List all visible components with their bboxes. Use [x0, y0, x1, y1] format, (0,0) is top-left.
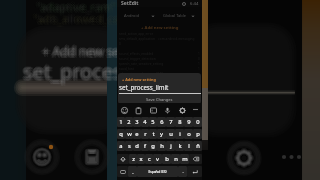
staticText: 8 [178, 118, 182, 126]
staticText: l [188, 142, 190, 150]
button[interactable]: Backspace [189, 154, 202, 164]
button[interactable]: ssl_session_cache_size 2048 [119, 71, 200, 76]
staticText: . [182, 169, 184, 175]
button[interactable]: sms_default_application com.android.mess… [119, 36, 200, 41]
button[interactable]: 8 [175, 117, 184, 127]
staticText: set_proces [25, 57, 125, 84]
button[interactable]: p [193, 129, 202, 139]
button[interactable]: Shift [117, 154, 129, 164]
staticText: "adb_allowed_co [33, 9, 120, 24]
button[interactable]: u [166, 129, 175, 139]
staticText: "adaptive_ram" [35, 0, 116, 13]
staticText: set_proces [23, 58, 123, 85]
button[interactable]: 5 [149, 117, 157, 127]
button[interactable]: Android [124, 12, 155, 19]
button[interactable]: + Add new setting [122, 77, 156, 82]
staticText: , [132, 169, 134, 175]
staticText: "adaptive_ram" [37, 0, 118, 15]
staticText: "adaptive_ram" [38, 0, 119, 14]
staticText: Global Table [163, 13, 191, 18]
staticText: + Add new se [41, 42, 119, 59]
button[interactable]: Global Table [163, 12, 195, 19]
button[interactable]: j [166, 141, 175, 151]
button[interactable]: c [145, 154, 153, 164]
button[interactable]: t [149, 129, 157, 139]
button[interactable]: 2 [125, 117, 133, 127]
button[interactable]: r [141, 129, 149, 139]
button[interactable]: Voice input [162, 105, 172, 115]
button[interactable]: f [141, 141, 149, 151]
button[interactable]: z [129, 154, 137, 164]
button[interactable]: e [133, 129, 141, 139]
button[interactable]: Español (ES) [137, 166, 178, 177]
button[interactable]: q [117, 129, 125, 139]
button[interactable]: + Add new setting [119, 24, 200, 31]
button[interactable]: 9 [184, 117, 193, 127]
button[interactable]: v [153, 154, 162, 164]
button[interactable]: 4 [141, 117, 149, 127]
button[interactable]: m [180, 154, 189, 164]
button[interactable]: Enter [187, 166, 202, 177]
button[interactable]: w [125, 129, 133, 139]
button[interactable]: 0 [193, 117, 202, 127]
staticText: n [174, 155, 178, 163]
staticText: "adaptive_ram" [37, 0, 118, 13]
button[interactable]: d [133, 141, 141, 151]
staticText: 7 [169, 118, 173, 126]
button[interactable]: Symbols [117, 166, 128, 177]
button[interactable]: 6 [157, 117, 166, 127]
button[interactable]: Collapse [191, 105, 200, 114]
staticText: "adb_allowed_co [35, 10, 122, 25]
staticText: + Add new se [42, 45, 120, 62]
staticText: + Add new se [40, 43, 118, 60]
button[interactable]: GIF [148, 105, 158, 115]
button[interactable]: l [184, 141, 193, 151]
staticText: Español (ES) [148, 170, 167, 174]
staticText: "adb_allowed_co [32, 10, 119, 25]
button[interactable]: y [157, 129, 166, 139]
button[interactable]: a [117, 141, 125, 151]
staticText: b [165, 155, 169, 163]
button[interactable]: 1 [117, 117, 125, 127]
staticText: + Add new se [41, 45, 119, 62]
button[interactable]: ñ [193, 141, 202, 151]
button[interactable]: Settings [177, 105, 187, 115]
button[interactable]: . [178, 166, 187, 177]
button[interactable]: b [162, 154, 171, 164]
staticText: f [144, 142, 146, 150]
staticText: set_proces [23, 56, 123, 83]
staticText: set_proces [22, 60, 122, 87]
button[interactable]: n [171, 154, 180, 164]
staticText: set_proces [22, 57, 122, 84]
button[interactable]: i [175, 129, 184, 139]
staticText: set_proces [23, 60, 123, 87]
button[interactable]: k [175, 141, 184, 151]
staticText: i [179, 130, 181, 138]
button[interactable]: Save Changes [118, 95, 201, 103]
button[interactable]: x [137, 154, 145, 164]
staticText: Android [124, 13, 151, 18]
staticText: speech_rate_sensitive_setting [119, 62, 198, 66]
button[interactable]: Emoji [119, 105, 129, 115]
staticText: set_proces [22, 59, 122, 86]
button[interactable]: 7 [166, 117, 175, 127]
button[interactable]: , [128, 166, 137, 177]
button[interactable]: s [125, 141, 133, 151]
staticText: + Add new se [43, 44, 121, 61]
button[interactable]: g [149, 141, 157, 151]
button[interactable]: o [184, 129, 193, 139]
button[interactable]: h [157, 141, 166, 151]
staticText: "adb_allowed_co [35, 13, 122, 28]
button[interactable]: 3 [133, 117, 141, 127]
staticText: 9 [187, 118, 191, 126]
button[interactable]: Clipboard [133, 105, 143, 115]
